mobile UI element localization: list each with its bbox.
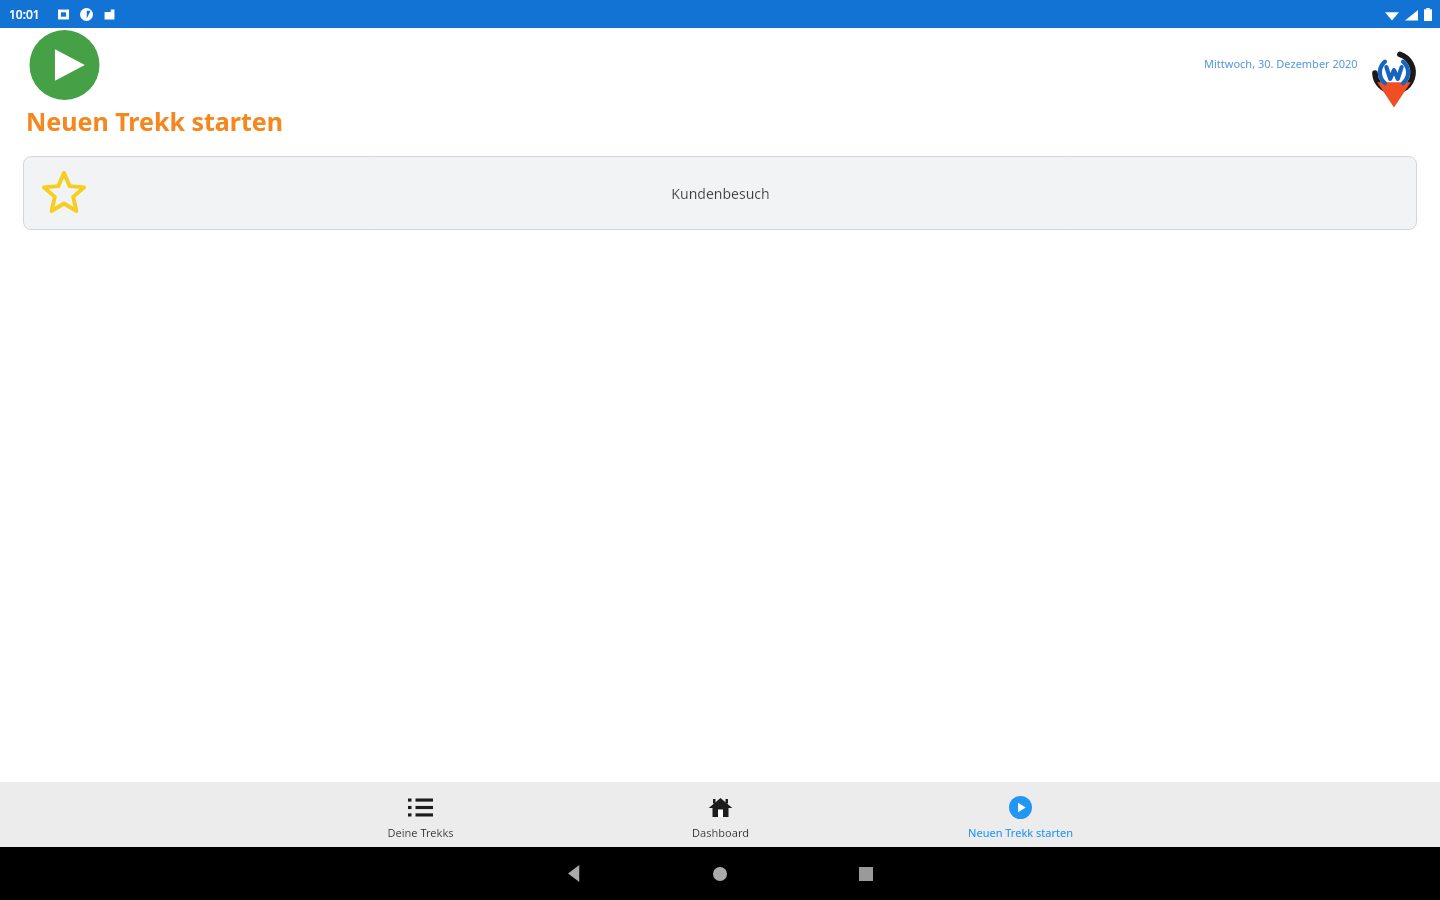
button[interactable]: Neuen Trekk starten — [23, 30, 106, 100]
button[interactable]: Home — [691, 847, 749, 900]
staticText: Dashboard — [692, 825, 749, 840]
staticText: Neuen Trekk starten — [26, 104, 284, 138]
button[interactable]: Back — [545, 847, 603, 900]
button[interactable]: Logo — [1366, 54, 1422, 100]
staticText: Kundenbesuch — [671, 184, 770, 203]
button[interactable]: Deine Trekks — [345, 782, 495, 847]
staticText: Mittwoch, 30. Dezember 2020 — [1204, 56, 1358, 71]
button[interactable]: Recent apps — [837, 847, 895, 900]
button[interactable]: Neuen Trekk starten — [945, 782, 1095, 847]
button[interactable]: Kundenbesuch — [23, 156, 1417, 230]
button[interactable]: Dashboard — [645, 782, 795, 847]
staticText: 10:01 — [9, 6, 40, 22]
staticText: Neuen Trekk starten — [968, 825, 1073, 840]
staticText: Deine Trekks — [387, 825, 454, 840]
